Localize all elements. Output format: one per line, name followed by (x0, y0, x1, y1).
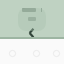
button[interactable] (18, 8, 46, 31)
button[interactable]: Back (26, 26, 38, 39)
